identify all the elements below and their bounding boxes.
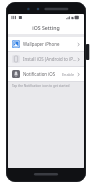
- staticText: Install iOS (Android to iPhone): [23, 56, 77, 62]
- button[interactable]: Notification iOS: [8, 67, 84, 81]
- staticText: Tap the Notification icon to get started: [12, 84, 70, 88]
- staticText: Wallpaper iPhone: [23, 41, 77, 47]
- button[interactable]: Wallpaper iPhone: [8, 37, 84, 51]
- other: Open: [77, 72, 80, 77]
- staticText: Notification iOS: [23, 71, 62, 77]
- other: Open: [77, 57, 80, 62]
- staticText: iOS Setting: [32, 24, 60, 31]
- staticText: Enable: [62, 72, 75, 77]
- button[interactable]: Install iOS (Android to iPhone): [8, 52, 84, 66]
- other: Open: [77, 42, 80, 47]
